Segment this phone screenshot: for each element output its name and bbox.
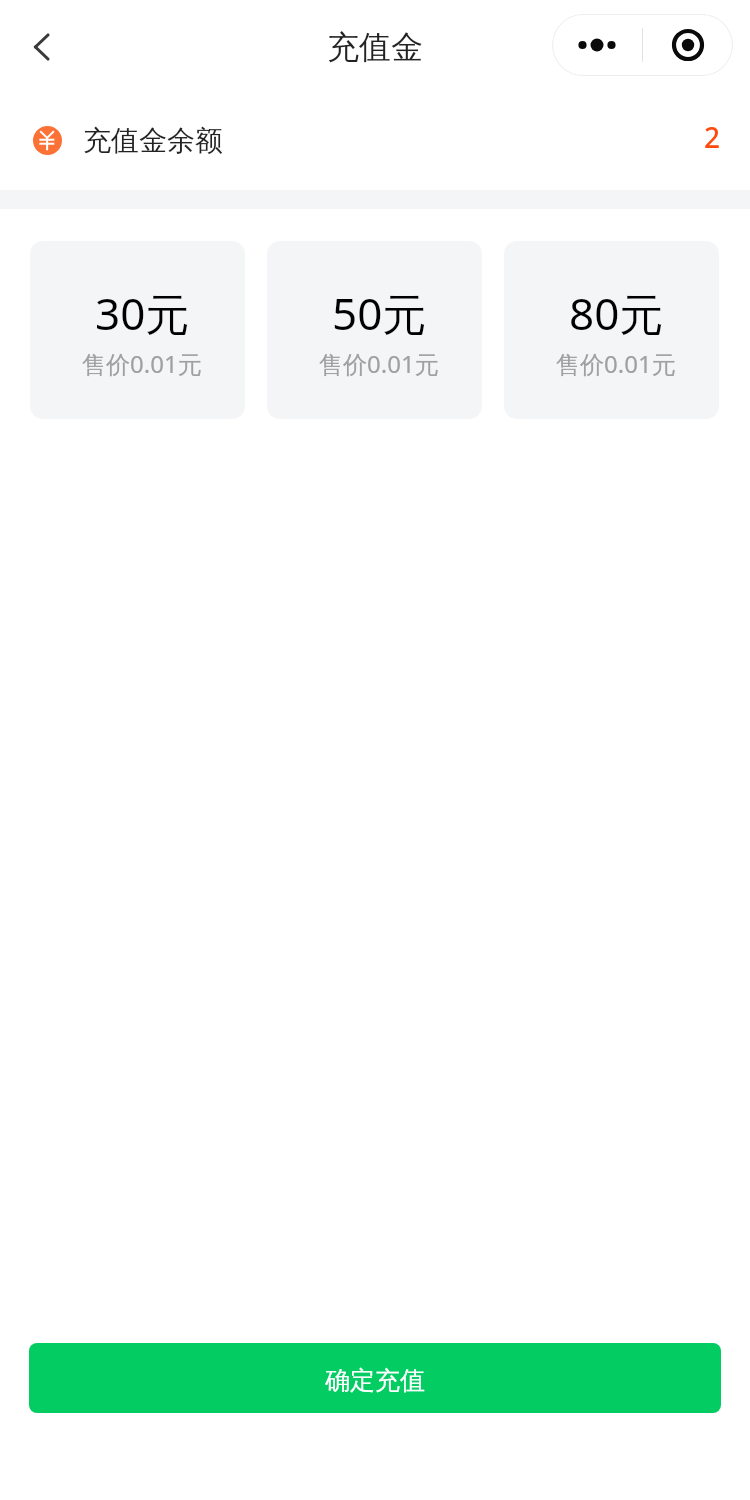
staticText: 80元	[569, 283, 664, 343]
button[interactable]: Back	[14, 19, 70, 75]
staticText: 售价0.01元	[82, 347, 202, 380]
button[interactable]: Close mini program	[643, 14, 733, 76]
staticText: 50元	[332, 283, 427, 343]
staticText: 售价0.01元	[319, 347, 439, 380]
button[interactable]: 30元	[30, 241, 245, 419]
button[interactable]: 50元	[267, 241, 482, 419]
button[interactable]: 确定充值	[29, 1343, 721, 1413]
staticText: 充值金	[327, 27, 423, 67]
staticText: 充值金余额	[83, 123, 223, 158]
staticText: 售价0.01元	[556, 347, 676, 380]
button[interactable]: 充值金余额	[0, 94, 750, 190]
staticText: 确定充值	[325, 1365, 425, 1396]
button[interactable]: More options	[552, 14, 642, 76]
staticText: 2	[704, 118, 721, 156]
button[interactable]: 80元	[504, 241, 719, 419]
staticText: 30元	[95, 283, 190, 343]
